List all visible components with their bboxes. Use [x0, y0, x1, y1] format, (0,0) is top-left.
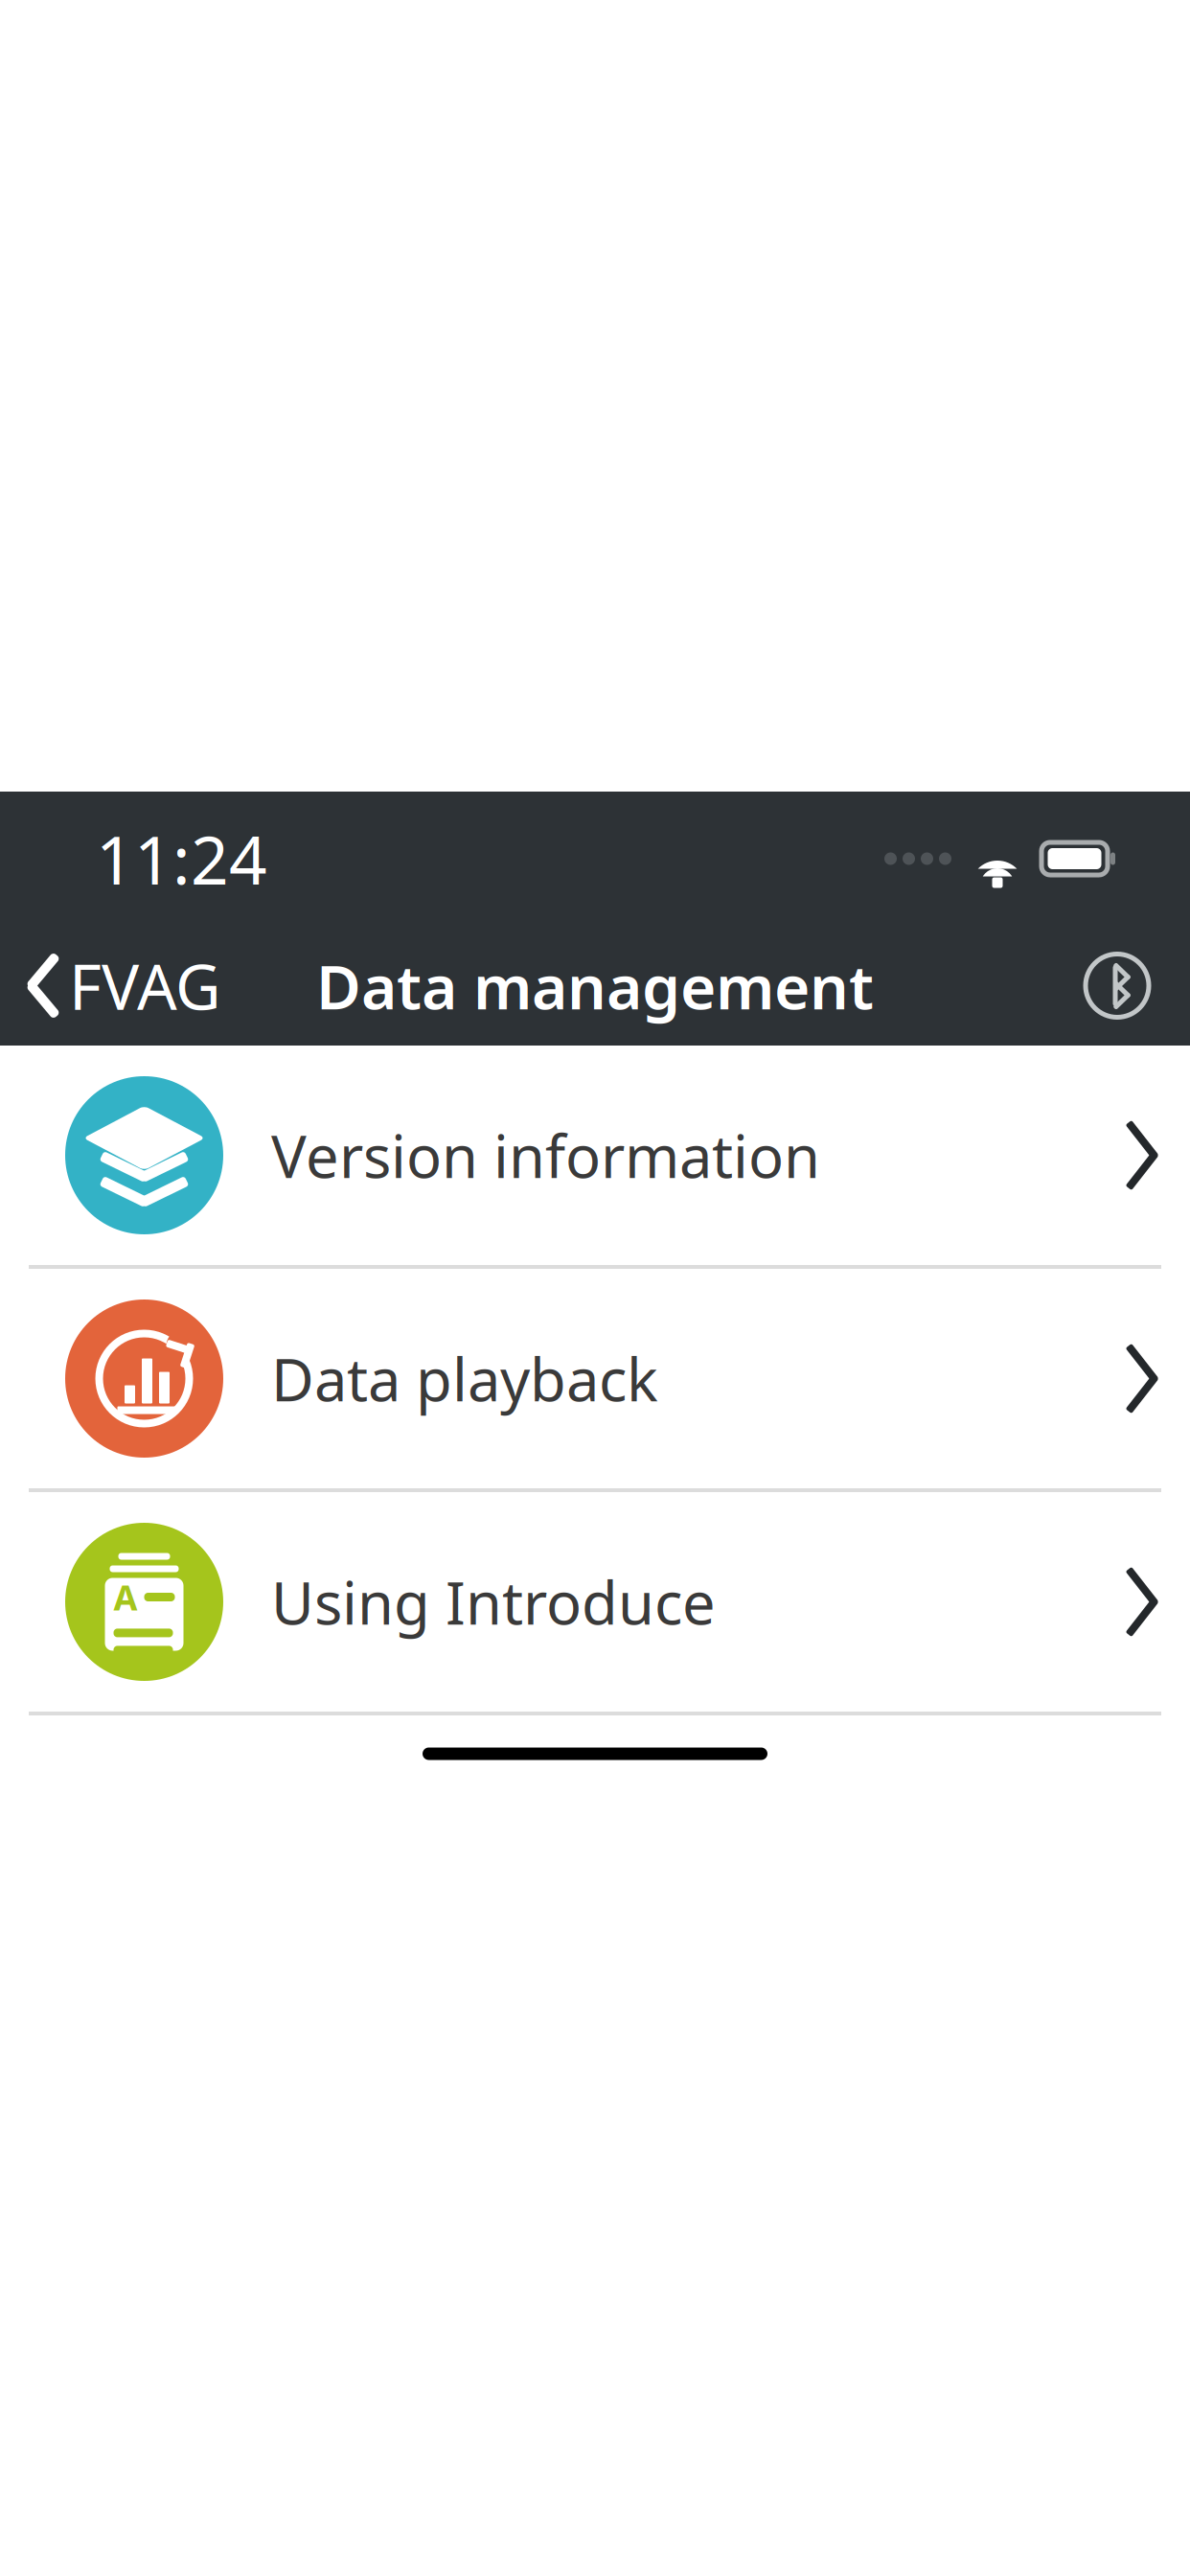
staticText: FVAG	[69, 944, 221, 1027]
staticText: 11:24	[96, 815, 267, 903]
staticText: Using Introduce	[271, 1563, 716, 1641]
button[interactable]: Version information	[0, 1046, 1190, 1269]
staticText: Data management	[316, 945, 874, 1026]
button[interactable]: FVAG	[0, 926, 239, 1046]
staticText: Data playback	[271, 1340, 658, 1418]
staticText: Version information	[271, 1116, 820, 1194]
staticText: A	[114, 1574, 137, 1620]
button[interactable]: A	[0, 1492, 1190, 1715]
button[interactable]: Bluetooth	[1081, 926, 1190, 1046]
button[interactable]: Data playback	[0, 1269, 1190, 1492]
